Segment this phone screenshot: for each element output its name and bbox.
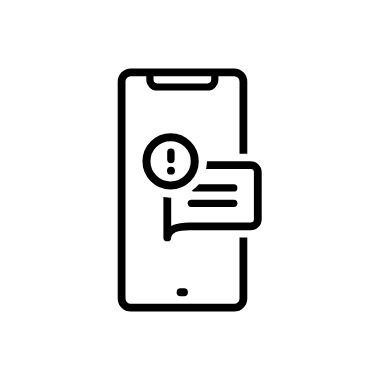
button[interactable]: Phone alert message notification — [0, 0, 380, 380]
